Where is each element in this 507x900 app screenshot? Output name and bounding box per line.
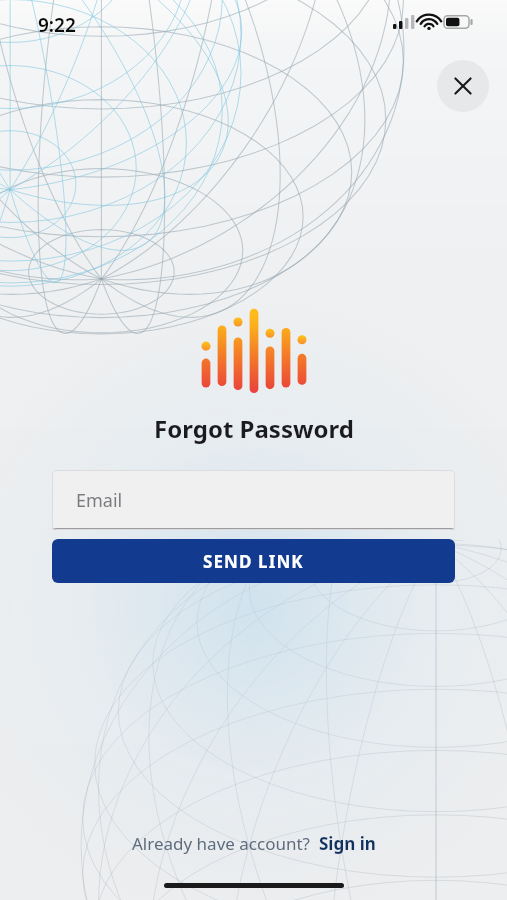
staticText: SEND LINK — [203, 550, 304, 573]
button[interactable]: Close — [437, 60, 489, 112]
staticText: 9:22 — [38, 12, 76, 38]
button[interactable]: SEND LINK — [52, 539, 455, 583]
staticText: Already have account? — [132, 832, 310, 855]
button[interactable]: Email — [52, 470, 455, 530]
staticText: Sign in — [319, 832, 376, 855]
staticText: Email — [76, 488, 123, 513]
button[interactable]: Already have account? — [120, 826, 388, 861]
staticText: Forgot Password — [154, 412, 354, 445]
